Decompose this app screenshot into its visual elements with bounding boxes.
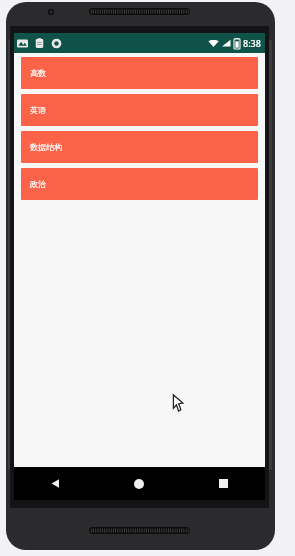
button[interactable]: 数据结构	[21, 131, 258, 163]
button[interactable]: 英语	[21, 94, 258, 126]
staticText: 高数	[30, 68, 46, 78]
staticText: 政治	[30, 179, 46, 189]
staticText: 8:38	[243, 37, 261, 49]
button[interactable]: Home	[97, 467, 181, 500]
staticText: 数据结构	[30, 142, 62, 152]
button[interactable]: Back	[14, 467, 97, 500]
staticText: 英语	[30, 105, 46, 115]
button[interactable]: Recent apps	[181, 467, 265, 500]
button[interactable]: 高数	[21, 57, 258, 89]
button[interactable]: 政治	[21, 168, 258, 200]
